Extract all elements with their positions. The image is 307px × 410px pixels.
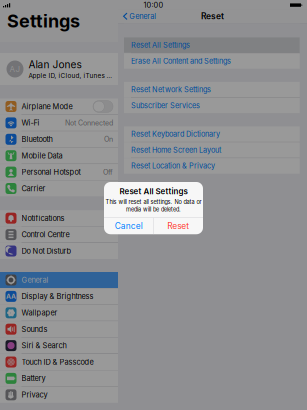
staticText: AA: [6, 292, 16, 300]
button[interactable]: Wallpaper: [0, 305, 118, 321]
staticText: Subscriber Services: [131, 101, 200, 110]
staticText: Off: [103, 168, 113, 176]
button[interactable]: Reset Network Settings: [124, 82, 300, 97]
staticText: Mobile Data: [21, 151, 62, 160]
staticText: Wallpaper: [21, 308, 57, 317]
button[interactable]: General: [118, 9, 156, 23]
staticText: Do Not Disturb: [21, 246, 71, 255]
button[interactable]: Touch ID & Passcode: [0, 354, 118, 370]
button[interactable]: Airplane Mode: [0, 98, 118, 114]
button[interactable]: Subscriber Services: [124, 98, 300, 113]
staticText: Notifications: [21, 214, 64, 223]
staticText: Battery: [21, 374, 45, 383]
staticText: Reset Home Screen Layout: [131, 146, 221, 154]
staticText: On: [104, 135, 113, 143]
button[interactable]: Wi-Fi: [0, 115, 118, 131]
button[interactable]: Reset: [154, 218, 203, 234]
staticText: AJ: [9, 64, 20, 74]
staticText: Erase All Content and Settings: [131, 57, 231, 65]
button[interactable]: Erase All Content and Settings: [124, 53, 300, 69]
button[interactable]: AA: [0, 288, 118, 304]
staticText: Apple ID, iCloud, iTunes & App St...: [28, 72, 114, 79]
staticText: Cancel: [115, 221, 143, 231]
staticText: Not Connected: [65, 119, 113, 127]
button[interactable]: Personal Hotspot: [0, 164, 118, 180]
staticText: Airplane Mode: [21, 102, 72, 111]
staticText: Reset All Settings: [119, 187, 187, 196]
staticText: General: [21, 275, 48, 284]
button[interactable]: Do Not Disturb: [0, 243, 118, 259]
staticText: Reset Network Settings: [131, 85, 211, 94]
button[interactable]: General: [0, 272, 118, 288]
staticText: Siri & Search: [21, 341, 66, 350]
button[interactable]: Bluetooth: [0, 131, 118, 147]
staticText: Personal Hotspot: [21, 168, 80, 177]
button[interactable]: Reset Home Screen Layout: [124, 142, 300, 158]
button[interactable]: Privacy: [0, 387, 118, 403]
staticText: Reset Keyboard Dictionary: [131, 130, 220, 139]
staticText: This will reset all settings. No data or: [105, 199, 201, 205]
staticText: Settings: [7, 10, 80, 32]
staticText: media will be deleted.: [126, 206, 181, 213]
staticText: Display & Brightness: [21, 292, 93, 301]
staticText: 10:00: [143, 0, 163, 9]
staticText: Reset: [167, 221, 189, 231]
button[interactable]: Reset Keyboard Dictionary: [124, 126, 300, 142]
button[interactable]: Carrier: [0, 180, 118, 196]
staticText: Bluetooth: [21, 135, 52, 144]
staticText: Sounds: [21, 325, 47, 334]
button[interactable]: Notifications: [0, 210, 118, 226]
button[interactable]: Cancel: [104, 218, 153, 234]
staticText: Reset: [201, 11, 224, 21]
staticText: Reset Location & Privacy: [131, 161, 215, 170]
button[interactable]: Control Centre: [0, 227, 118, 243]
staticText: Carrier: [21, 184, 45, 193]
staticText: Privacy: [21, 390, 47, 399]
button[interactable]: Battery: [0, 370, 118, 386]
button[interactable]: Reset All Settings: [124, 37, 300, 53]
button[interactable]: Reset Location & Privacy: [124, 158, 300, 174]
staticText: Reset All Settings: [131, 41, 190, 50]
button[interactable]: Siri & Search: [0, 338, 118, 354]
staticText: Wi-Fi: [21, 118, 39, 127]
staticText: Alan Jones: [28, 58, 81, 71]
staticText: Control Centre: [21, 230, 69, 239]
button[interactable]: Mobile Data: [0, 148, 118, 164]
button[interactable]: Sounds: [0, 321, 118, 337]
staticText: General: [129, 12, 156, 21]
staticText: Touch ID & Passcode: [21, 357, 93, 366]
button[interactable]: AJ: [0, 53, 118, 85]
